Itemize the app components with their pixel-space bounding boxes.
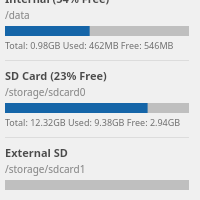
- staticText: /storage/sdcard0: [5, 85, 86, 99]
- staticText: Internal (54% Free): [5, 0, 110, 6]
- staticText: SD Card (23% Free): [5, 68, 107, 83]
- staticText: Total: 12.32GB Used: 9.38GB Free: 2.94GB: [5, 116, 181, 128]
- staticText: /storage/sdcard1: [5, 162, 86, 176]
- button[interactable]: Internal (54% Free): [5, 0, 189, 51]
- staticText: External SD: [5, 145, 68, 160]
- staticText: /data: [5, 8, 30, 22]
- staticText: Total: 0.98GB Used: 462MB Free: 546MB: [5, 39, 174, 51]
- button[interactable]: External SD: [5, 145, 189, 190]
- button[interactable]: SD Card (23% Free): [5, 68, 189, 128]
